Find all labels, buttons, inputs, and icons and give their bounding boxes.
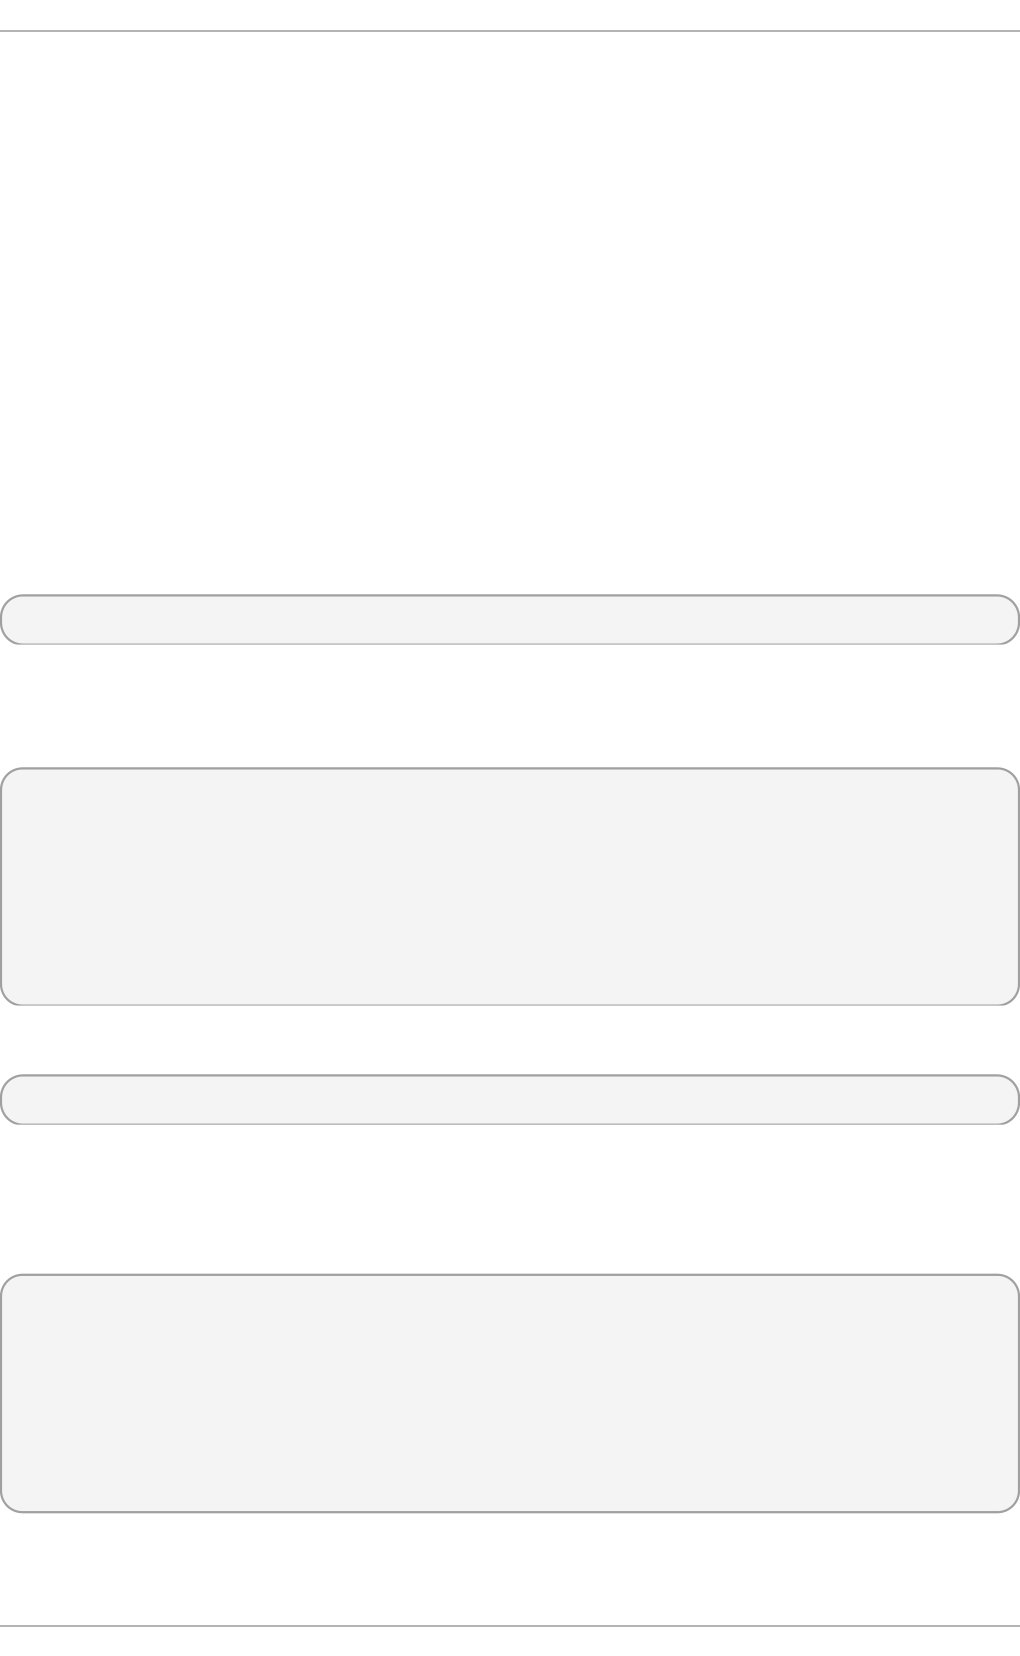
button[interactable]: Row 2 [0, 1075, 1020, 1125]
button[interactable]: Card 2 [0, 1275, 1020, 1512]
button[interactable]: Card 1 [0, 768, 1020, 1006]
button[interactable]: Row 1 [0, 595, 1020, 645]
